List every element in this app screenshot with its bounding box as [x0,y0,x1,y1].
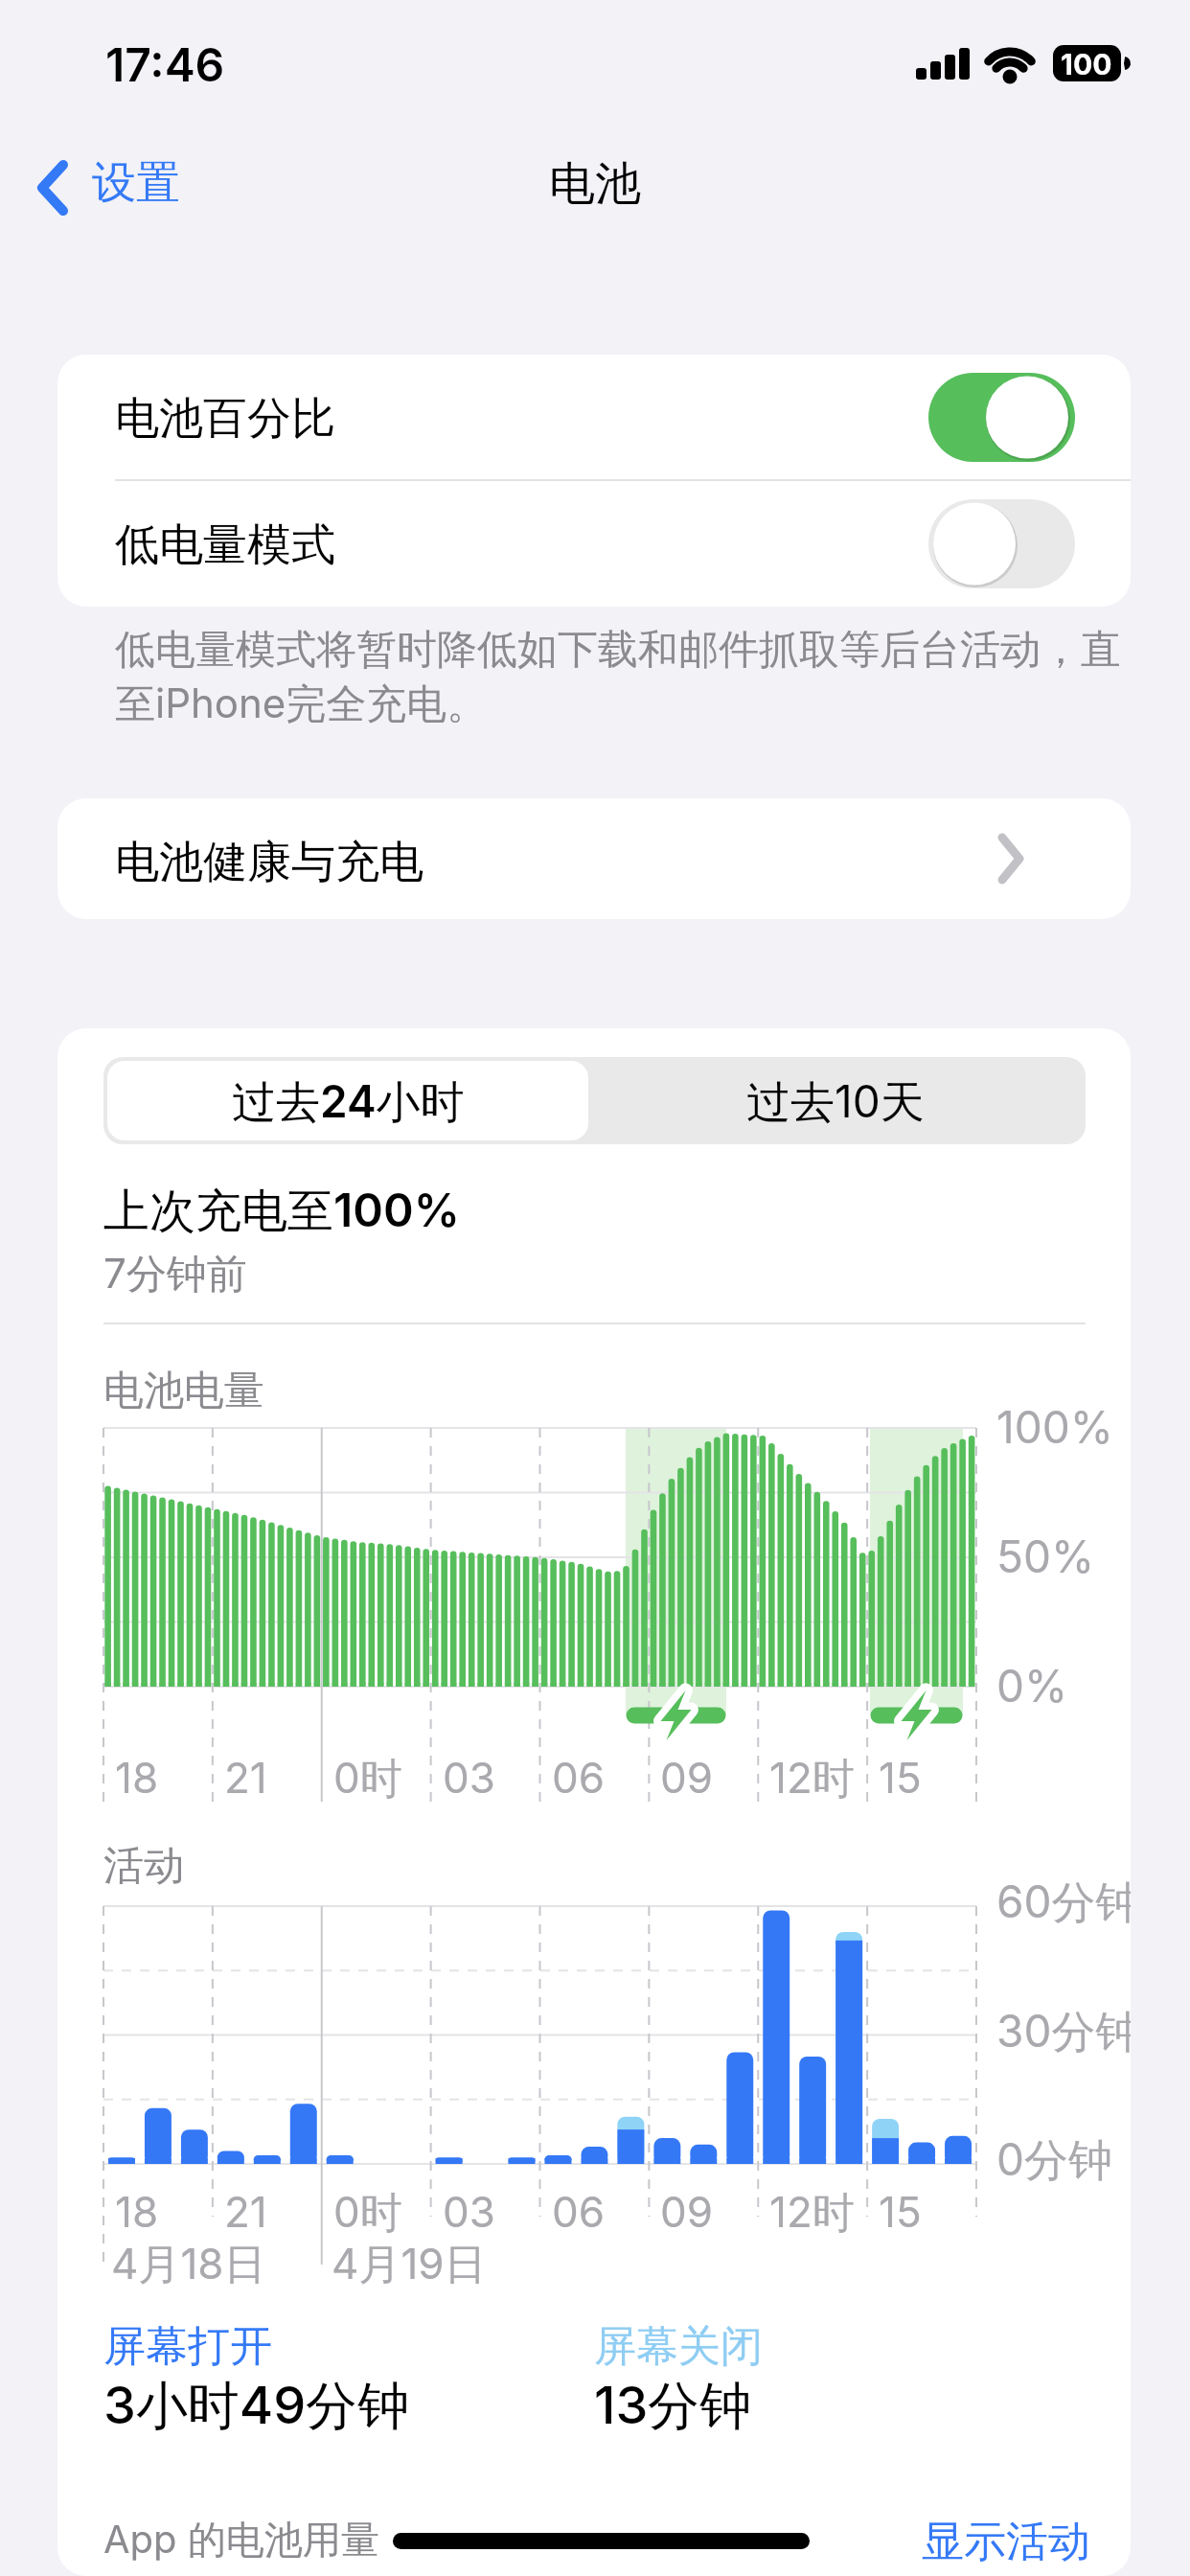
staticText: 4月19日 [332,2238,487,2291]
staticText: 电池电量 [103,1366,264,1416]
staticText: 50% [996,1529,1095,1583]
staticText: 12时 [769,2186,855,2240]
staticText: 3小时49分钟 [103,2374,410,2439]
staticText: 30分钟 [996,2004,1131,2059]
staticText: 06 [552,2186,606,2237]
staticText: 15 [879,1752,922,1803]
staticText: 03 [443,2186,495,2237]
staticText: 60分钟 [996,1874,1131,1930]
staticText: 21 [224,1752,267,1803]
button[interactable]: 显示活动 [515,2508,1090,2575]
staticText: 显示活动 [922,2516,1090,2568]
staticText: App 的电池用量 [103,2516,379,2564]
staticText: 电池 [549,155,641,213]
staticText: 屏幕关闭 [594,2320,763,2373]
staticText: 12时 [769,1752,855,1805]
staticText: 09 [660,1752,714,1803]
staticText: 过去10天 [746,1074,925,1130]
staticText: 09 [660,2186,714,2237]
staticText: 18 [115,1752,159,1803]
staticText: 0% [996,1659,1068,1713]
staticText: 电池百分比 [115,391,335,447]
button[interactable] [588,1061,1082,1140]
staticText: 4月18日 [111,2238,266,2291]
staticText: 电池健康与充电 [115,835,423,890]
staticText: 设置 [92,155,180,211]
button[interactable]: 低电量模式 [57,481,1131,607]
staticText: 0时 [333,2186,402,2240]
button[interactable]: 电池百分比 [57,355,1131,480]
staticText: 06 [552,1752,606,1803]
staticText: 17:46 [105,36,225,92]
staticText: 上次充电至100% [103,1182,460,1240]
button[interactable]: 电池健康与充电 [57,798,1131,919]
staticText: 低电量模式 [115,517,335,573]
staticText: 18 [115,2186,159,2237]
staticText: 7分钟前 [103,1249,247,1299]
staticText: 21 [224,2186,267,2237]
button[interactable]: 设置 [29,149,211,226]
staticText: 0时 [333,1752,402,1805]
staticText: 活动 [103,1841,184,1892]
staticText: 03 [443,1752,495,1803]
staticText: 过去24小时 [232,1074,465,1130]
staticText: 100 [1061,47,1112,81]
staticText: 15 [879,2186,922,2237]
staticText: 0分钟 [996,2132,1113,2188]
button[interactable] [107,1061,588,1140]
staticText: 100% [996,1400,1113,1454]
staticText: 低电量模式将暂时降低如下载和邮件抓取等后台活动，直 至iPhone完全充电。 [115,625,1121,730]
staticText: 屏幕打开 [103,2320,272,2373]
staticText: 13分钟 [594,2374,752,2439]
